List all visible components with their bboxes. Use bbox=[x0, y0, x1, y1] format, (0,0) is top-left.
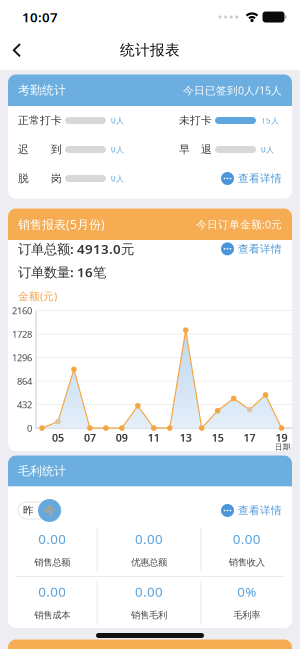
staticText: 销售收入 bbox=[229, 557, 265, 568]
staticText: 查看详情 bbox=[238, 172, 282, 185]
staticText: 11 bbox=[148, 430, 160, 445]
button[interactable]: 昨 bbox=[18, 499, 39, 522]
staticText: 今日已签到0人/15人 bbox=[183, 83, 282, 97]
staticText: 订单总额: 4913.0元 bbox=[18, 240, 134, 258]
staticText: 毛利率 bbox=[233, 609, 260, 621]
staticText: 0% bbox=[237, 583, 256, 600]
staticText: 17 bbox=[244, 430, 256, 445]
staticText: 09 bbox=[116, 430, 128, 445]
button[interactable]: 今 bbox=[38, 499, 61, 522]
staticText: 销售成本 bbox=[34, 609, 70, 621]
staticText: 毛利统计 bbox=[18, 464, 66, 478]
staticText: 0.00 bbox=[38, 583, 66, 600]
staticText: 销售报表(5月份) bbox=[18, 216, 105, 232]
staticText: 432 bbox=[17, 398, 32, 411]
staticText: 864 bbox=[17, 375, 32, 387]
staticText: 1296 bbox=[12, 351, 32, 364]
staticText: 优惠总额 bbox=[131, 557, 167, 568]
staticText: 迟 到 bbox=[18, 143, 62, 156]
button[interactable]: 下一报表 bbox=[8, 639, 292, 649]
staticText: 早 退 bbox=[179, 143, 212, 156]
staticText: 查看详情 bbox=[238, 504, 282, 517]
button[interactable]: 查看详情 bbox=[221, 242, 282, 255]
staticText: 今 bbox=[43, 503, 55, 518]
button[interactable]: 查看详情 bbox=[221, 172, 282, 185]
staticText: 0人 bbox=[111, 144, 124, 155]
staticText: 正常打卡 bbox=[18, 114, 62, 127]
staticText: 0.00 bbox=[233, 530, 261, 548]
staticText: 今日订单金额:0元 bbox=[196, 217, 282, 231]
staticText: 0.00 bbox=[135, 583, 163, 600]
staticText: 0人 bbox=[111, 115, 124, 126]
staticText: 0.00 bbox=[135, 530, 163, 548]
button[interactable]: 返回 bbox=[0, 30, 31, 70]
staticText: 0 bbox=[27, 422, 32, 434]
staticText: 0人 bbox=[111, 173, 124, 184]
staticText: 13 bbox=[180, 430, 192, 445]
staticText: 昨 bbox=[23, 504, 34, 517]
staticText: 销售总额 bbox=[34, 557, 70, 568]
staticText: 10:07 bbox=[22, 8, 58, 26]
staticText: 05 bbox=[52, 430, 64, 445]
staticText: 脱 岗 bbox=[18, 172, 62, 185]
staticText: 2160 bbox=[12, 304, 32, 317]
staticText: 订单数量: 16笔 bbox=[18, 263, 106, 281]
staticText: 07 bbox=[84, 430, 96, 445]
staticText: 1728 bbox=[12, 328, 32, 340]
staticText: 19 bbox=[276, 430, 288, 445]
staticText: 未打卡 bbox=[179, 114, 212, 127]
staticText: 0.00 bbox=[38, 530, 66, 548]
staticText: 金额(元) bbox=[18, 289, 57, 303]
staticText: 查看详情 bbox=[238, 242, 282, 255]
staticText: 0人 bbox=[261, 144, 274, 155]
staticText: 15 bbox=[212, 430, 224, 445]
staticText: 15人 bbox=[261, 115, 279, 126]
staticText: 考勤统计 bbox=[18, 83, 66, 98]
staticText: 销售毛利 bbox=[131, 609, 167, 621]
button[interactable]: 查看详情 bbox=[221, 504, 282, 517]
staticText: 统计报表 bbox=[120, 41, 180, 59]
staticText: 日期 bbox=[274, 442, 290, 452]
